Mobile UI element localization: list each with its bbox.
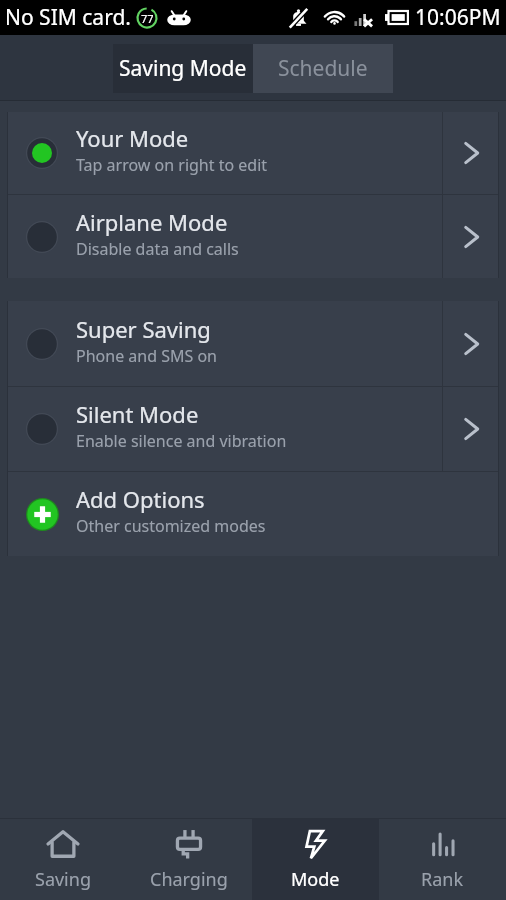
staticText: 77 [141,11,154,26]
button[interactable]: Edit Your Mode [443,112,498,194]
button[interactable]: Silent Mode [8,387,498,471]
staticText: Phone and SMS on [76,345,217,367]
button[interactable]: Saving Mode [113,44,253,93]
button[interactable]: Add Options [8,472,498,556]
staticText: Add Options [76,484,205,514]
staticText: Tap arrow on right to edit [76,154,268,176]
staticText: Disable data and calls [76,238,239,260]
staticText: Rank [421,867,464,892]
staticText: Enable silence and vibration [76,430,287,452]
staticText: Saving Mode [119,54,247,83]
staticText: Your Mode [76,123,189,153]
button[interactable]: Your Mode [8,112,498,194]
staticText: Saving [35,867,91,892]
button[interactable]: Rank [379,819,506,900]
staticText: Super Saving [76,314,211,344]
button[interactable]: Mode [252,819,379,900]
button[interactable]: Edit Silent Mode [443,387,498,471]
staticText: 10:06PM [415,3,501,32]
staticText: Schedule [278,54,368,83]
button[interactable]: Super Saving [8,301,498,386]
button[interactable]: Charging [126,819,252,900]
staticText: Charging [150,867,228,892]
staticText: No SIM card. [5,3,131,32]
button[interactable]: Airplane Mode [8,195,498,278]
button[interactable]: Saving [0,819,126,900]
button[interactable]: Edit Super Saving [443,301,498,386]
staticText: Silent Mode [76,399,199,429]
button[interactable]: Edit Airplane Mode [443,195,498,278]
staticText: Mode [291,867,340,892]
staticText: Other customized modes [76,515,266,537]
button[interactable]: Schedule [253,44,393,93]
staticText: Airplane Mode [76,207,228,237]
